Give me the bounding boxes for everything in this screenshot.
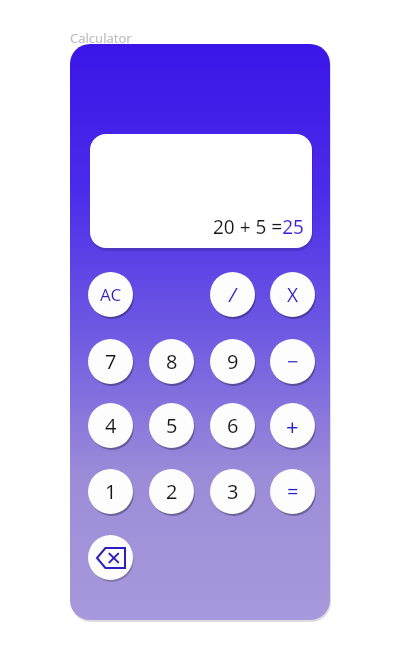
- staticText: 6: [227, 412, 239, 439]
- button[interactable]: 8: [149, 339, 194, 384]
- staticText: 8: [166, 348, 178, 375]
- button[interactable]: 7: [88, 339, 133, 384]
- staticText: =: [287, 478, 299, 505]
- button[interactable]: /: [210, 272, 255, 317]
- staticText: 20 + 5 =25: [213, 214, 304, 240]
- staticText: 3: [227, 478, 239, 505]
- button[interactable]: Backspace: [88, 535, 133, 580]
- staticText: 1: [105, 478, 117, 505]
- staticText: +: [286, 411, 299, 441]
- button[interactable]: −: [270, 339, 315, 384]
- staticText: 9: [227, 348, 239, 375]
- staticText: 5: [166, 412, 178, 439]
- button[interactable]: X: [270, 272, 315, 317]
- button[interactable]: AC: [88, 272, 133, 317]
- staticText: 4: [105, 412, 117, 439]
- button[interactable]: 4: [88, 403, 133, 448]
- button[interactable]: =: [270, 469, 315, 514]
- staticText: 7: [105, 348, 117, 375]
- button[interactable]: 6: [210, 403, 255, 448]
- button[interactable]: 20 + 5 =25: [90, 134, 312, 248]
- button[interactable]: 5: [149, 403, 194, 448]
- button[interactable]: 2: [149, 469, 194, 514]
- staticText: X: [287, 282, 299, 308]
- button[interactable]: 3: [210, 469, 255, 514]
- button[interactable]: 1: [88, 469, 133, 514]
- staticText: 2: [166, 478, 178, 505]
- button[interactable]: 9: [210, 339, 255, 384]
- staticText: Calculator: [70, 29, 132, 47]
- button[interactable]: +: [270, 403, 315, 448]
- staticText: /: [229, 281, 237, 308]
- staticText: −: [287, 348, 299, 375]
- staticText: AC: [100, 283, 122, 306]
